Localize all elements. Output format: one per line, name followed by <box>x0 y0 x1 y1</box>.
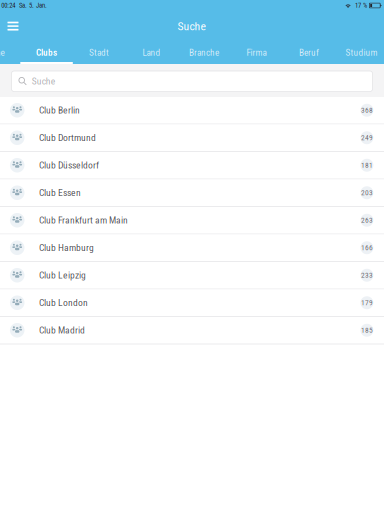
button[interactable]: Name <box>0 43 20 64</box>
button[interactable]: Suche <box>11 71 372 91</box>
button[interactable]: Menu <box>0 14 25 39</box>
button[interactable]: Firma <box>230 43 283 64</box>
staticText: Branche <box>189 47 219 58</box>
button[interactable]: Beruf <box>283 43 335 64</box>
staticText: Suche <box>32 76 56 87</box>
button[interactable]: Club London <box>0 289 384 317</box>
staticText: 233 <box>361 271 373 280</box>
staticText: Club Hamburg <box>39 242 94 253</box>
button[interactable]: Branche <box>178 43 230 64</box>
staticText: Clubs <box>36 47 57 58</box>
staticText: Club Frankfurt am Main <box>39 215 128 226</box>
staticText: 249 <box>361 133 373 142</box>
staticText: 181 <box>361 161 373 170</box>
staticText: Club Düsseldorf <box>39 160 99 171</box>
button[interactable]: Club Leipzig <box>0 262 384 289</box>
staticText: 179 <box>361 298 373 307</box>
button[interactable]: Club Frankfurt am Main <box>0 207 384 234</box>
button[interactable]: Club Madrid <box>0 317 384 344</box>
staticText: 17 % <box>355 2 367 9</box>
staticText: Beruf <box>299 47 319 58</box>
staticText: 203 <box>361 188 373 197</box>
staticText: Club London <box>39 297 88 308</box>
staticText: 368 <box>361 106 373 115</box>
staticText: Club Dortmund <box>39 132 96 143</box>
staticText: Stadt <box>89 47 109 58</box>
staticText: Club Madrid <box>39 325 85 336</box>
button[interactable]: Club Dortmund <box>0 124 384 152</box>
staticText: Studium <box>346 47 378 58</box>
staticText: Suche <box>177 19 206 33</box>
staticText: Sa. 5. Jan. <box>19 2 47 9</box>
button[interactable]: Studium <box>335 43 384 64</box>
staticText: Club Berlin <box>39 105 80 116</box>
button[interactable]: Stadt <box>73 43 125 64</box>
button[interactable]: Club Düsseldorf <box>0 152 384 179</box>
staticText: 166 <box>361 243 373 252</box>
staticText: Firma <box>247 47 267 58</box>
button[interactable]: Club Essen <box>0 179 384 207</box>
button[interactable]: Land <box>125 43 178 64</box>
button[interactable]: Club Berlin <box>0 97 384 124</box>
staticText: Club Essen <box>39 187 81 198</box>
button[interactable]: Clubs <box>20 43 73 64</box>
staticText: 185 <box>361 326 373 335</box>
staticText: Land <box>143 47 161 58</box>
button[interactable]: Club Hamburg <box>0 234 384 262</box>
staticText: Club Leipzig <box>39 270 86 281</box>
staticText: 263 <box>361 216 373 225</box>
staticText: Name <box>0 47 4 58</box>
staticText: 00:24 <box>1 2 15 9</box>
